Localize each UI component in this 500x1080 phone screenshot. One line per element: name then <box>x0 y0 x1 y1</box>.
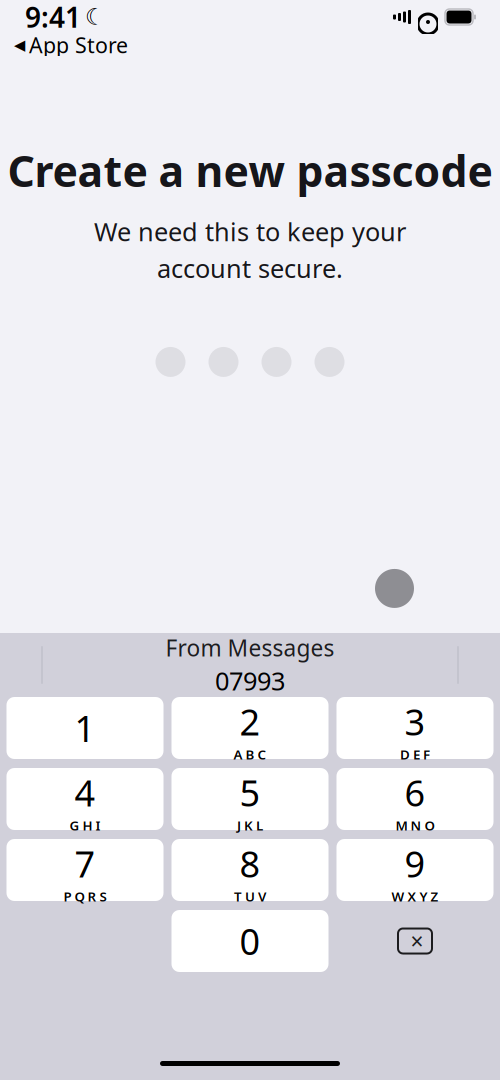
staticText: 07993 <box>215 664 285 697</box>
staticText: ◀ <box>14 37 25 53</box>
staticText: 9 <box>404 840 425 887</box>
button[interactable]: 1 <box>6 697 163 759</box>
staticText: 2 <box>239 698 260 745</box>
staticText: 4 <box>74 769 95 816</box>
staticText: A B C <box>233 746 266 763</box>
staticText: × <box>410 926 423 956</box>
button[interactable]: ◀ <box>14 31 128 59</box>
button[interactable]: 5 <box>171 768 328 830</box>
button[interactable]: 7 <box>6 839 163 901</box>
staticText: 7 <box>74 840 95 887</box>
staticText: G H I <box>69 817 100 834</box>
staticText: M N O <box>395 817 434 834</box>
button[interactable]: 2 <box>171 697 328 759</box>
button[interactable]: 0 <box>171 910 328 972</box>
staticText: App Store <box>29 31 128 59</box>
staticText: D E F <box>400 746 430 763</box>
staticText: W X Y Z <box>391 888 438 905</box>
staticText: From Messages <box>165 633 334 663</box>
staticText: 3 <box>404 698 425 745</box>
staticText: 0 <box>239 917 260 965</box>
staticText: T U V <box>234 888 266 905</box>
staticText: 8 <box>239 840 260 887</box>
button[interactable]: 4 <box>6 768 163 830</box>
staticText: We need this to keep your <box>94 215 406 248</box>
staticText: account secure. <box>157 251 343 285</box>
staticText: P Q R S <box>63 888 106 905</box>
staticText: 6 <box>404 769 425 816</box>
button[interactable]: 6 <box>336 768 493 830</box>
button[interactable]: Delete <box>336 910 493 972</box>
staticText: J K L <box>237 817 263 834</box>
button[interactable]: 3 <box>336 697 493 759</box>
staticText: 5 <box>239 769 260 816</box>
staticText: 9:41 <box>25 0 81 36</box>
button[interactable]: From Messages <box>135 629 364 701</box>
button[interactable]: 8 <box>171 839 328 901</box>
staticText: 1 <box>74 704 95 752</box>
button[interactable]: 9 <box>336 839 493 901</box>
staticText: Create a new passcode <box>7 142 492 199</box>
staticText: ☾ <box>85 4 105 30</box>
